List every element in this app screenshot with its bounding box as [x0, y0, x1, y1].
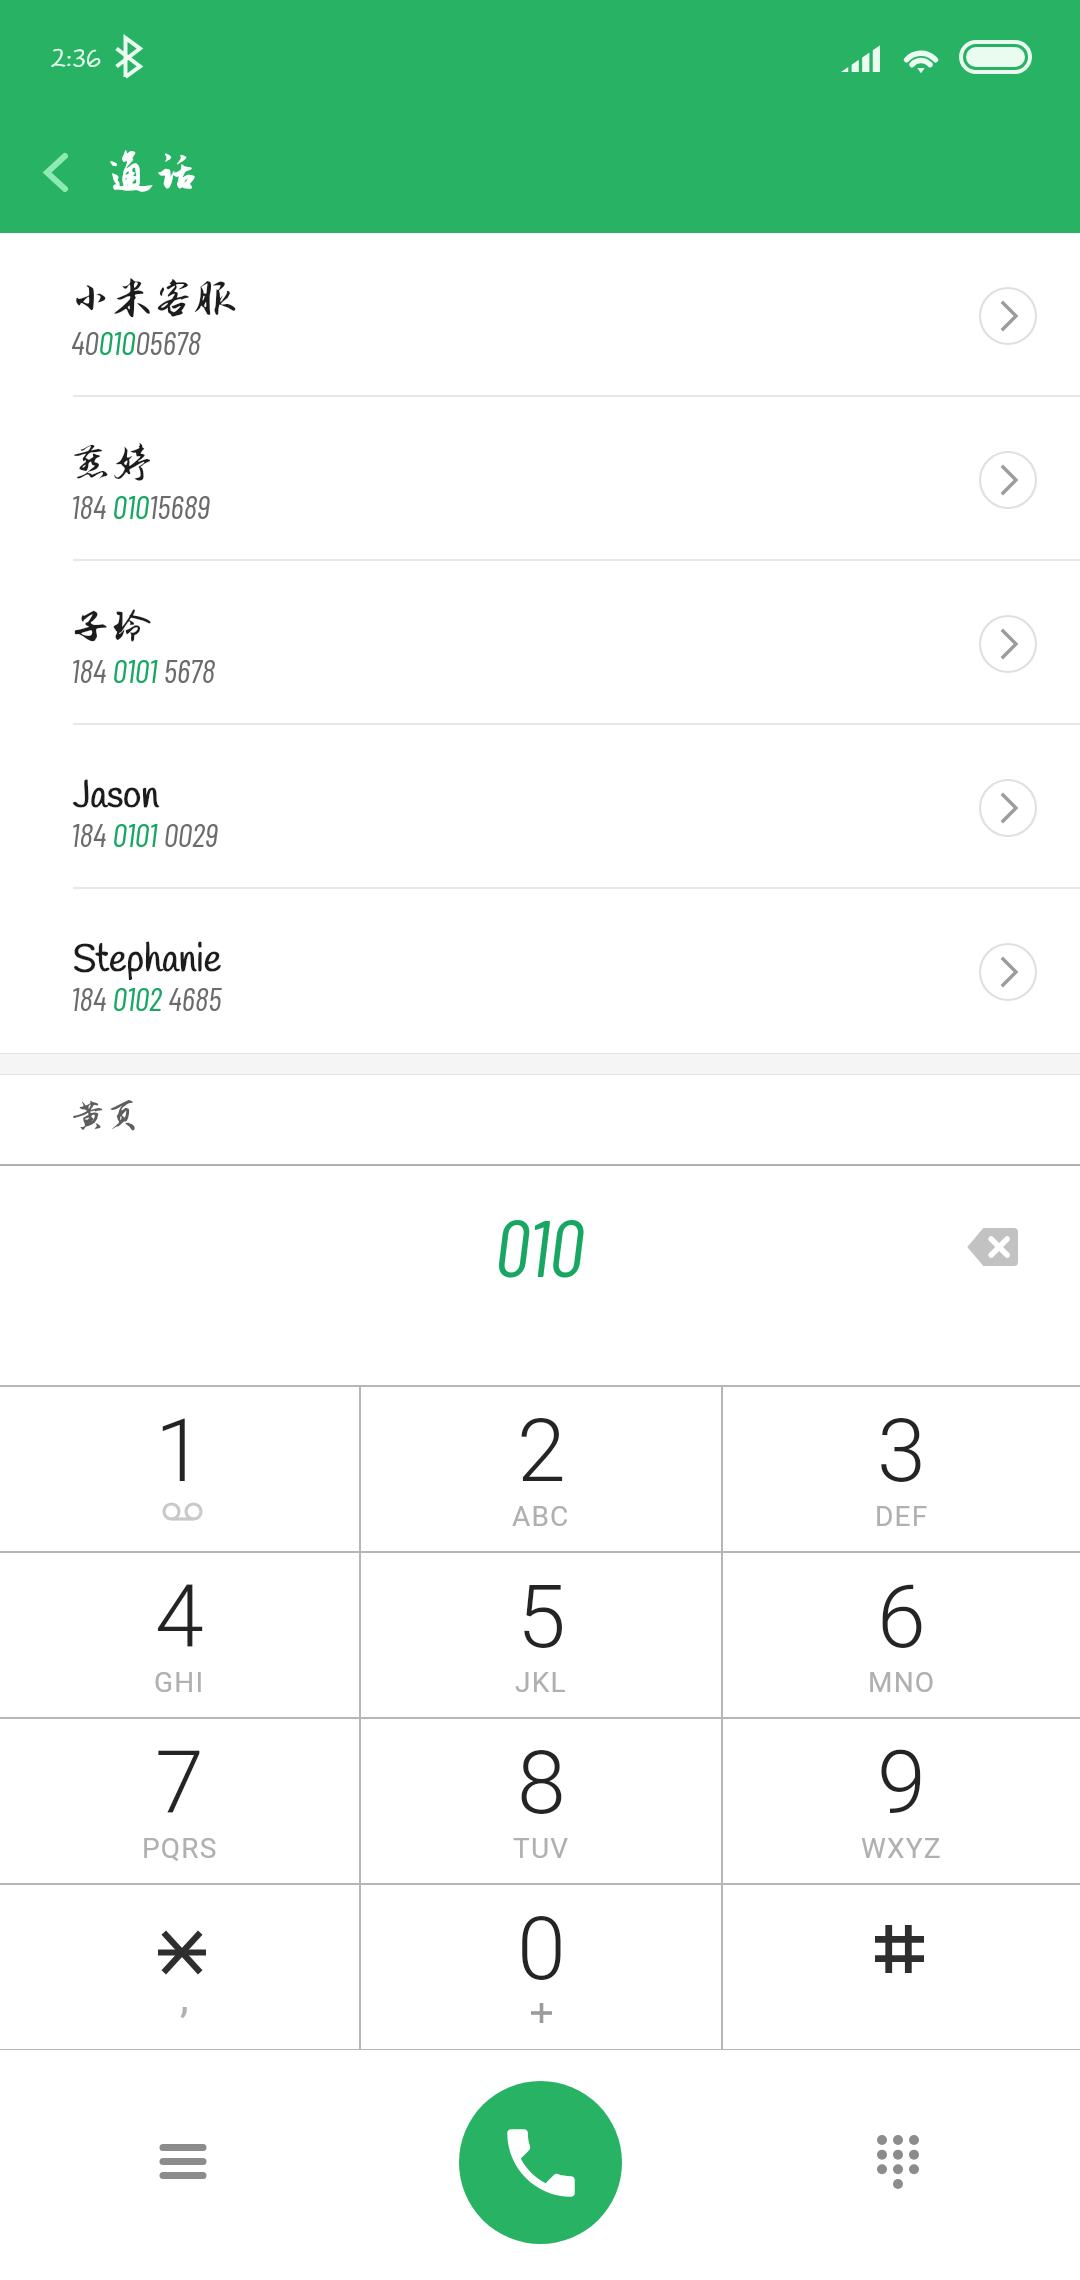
staticText: 0: [517, 1897, 566, 2000]
staticText: 8: [517, 1731, 566, 1834]
staticText: TUV: [513, 1832, 570, 1865]
staticText: 黄页: [70, 1097, 141, 1136]
button[interactable]: 小米客服: [0, 233, 1080, 397]
staticText: Jason: [73, 772, 159, 821]
staticText: Stephanie: [73, 936, 222, 985]
button[interactable]: Call history: [123, 2101, 243, 2221]
staticText: 2:36: [51, 43, 101, 78]
button[interactable]: Keypad: [838, 2102, 958, 2222]
staticText: JKL: [515, 1666, 567, 1699]
staticText: WXYZ: [861, 1832, 942, 1865]
staticText: GHI: [154, 1666, 205, 1699]
button[interactable]: Contact details: [955, 919, 1060, 1024]
staticText: 1: [155, 1399, 204, 1502]
staticText: 7: [155, 1731, 204, 1834]
staticText: 184 01015689: [71, 486, 210, 526]
button[interactable]: Jason: [0, 725, 1080, 889]
staticText: 4: [155, 1565, 204, 1668]
staticText: PQRS: [142, 1832, 218, 1865]
staticText: 9: [877, 1731, 926, 1834]
button[interactable]: Contact details: [955, 591, 1060, 696]
button[interactable]: 8: [361, 1719, 721, 1883]
button[interactable]: Backspace: [944, 1199, 1040, 1295]
staticText: 4001005678: [71, 322, 201, 362]
staticText: 184 0101 0029: [71, 814, 218, 854]
staticText: 小米客服: [70, 276, 236, 322]
staticText: 6: [877, 1565, 926, 1668]
staticText: 5: [517, 1565, 566, 1668]
button[interactable]: 9: [723, 1719, 1080, 1883]
staticText: ABC: [512, 1500, 570, 1533]
staticText: 2: [517, 1399, 566, 1502]
staticText: 184 0102 4685: [71, 978, 222, 1018]
button[interactable]: Call: [459, 2081, 622, 2244]
button[interactable]: Contact details: [955, 263, 1060, 368]
button[interactable]: 2: [361, 1387, 721, 1551]
button[interactable]: ,: [0, 1885, 359, 2049]
button[interactable]: 5: [361, 1553, 721, 1717]
button[interactable]: 1: [0, 1387, 359, 1551]
button[interactable]: Stephanie: [0, 889, 1080, 1053]
button[interactable]: 子玲: [0, 561, 1080, 725]
button[interactable]: 黄页: [0, 1075, 1080, 1164]
staticText: 3: [877, 1399, 926, 1502]
staticText: 010: [495, 1197, 584, 1293]
button[interactable]: 7: [0, 1719, 359, 1883]
staticText: 燕婷: [70, 440, 153, 486]
button[interactable]: Contact details: [955, 427, 1060, 532]
button[interactable]: 6: [723, 1553, 1080, 1717]
button[interactable]: [723, 1885, 1080, 2049]
staticText: 通话: [109, 147, 199, 197]
button[interactable]: Back: [10, 126, 102, 218]
staticText: MNO: [868, 1666, 936, 1699]
staticText: 子玲: [70, 604, 153, 650]
button[interactable]: Contact details: [955, 755, 1060, 860]
staticText: ,: [180, 1971, 190, 2023]
staticText: 184 0101 5678: [71, 650, 216, 690]
staticText: DEF: [875, 1500, 929, 1533]
button[interactable]: 3: [723, 1387, 1080, 1551]
button[interactable]: 0: [361, 1885, 721, 2049]
button[interactable]: 燕婷: [0, 397, 1080, 561]
button[interactable]: 4: [0, 1553, 359, 1717]
